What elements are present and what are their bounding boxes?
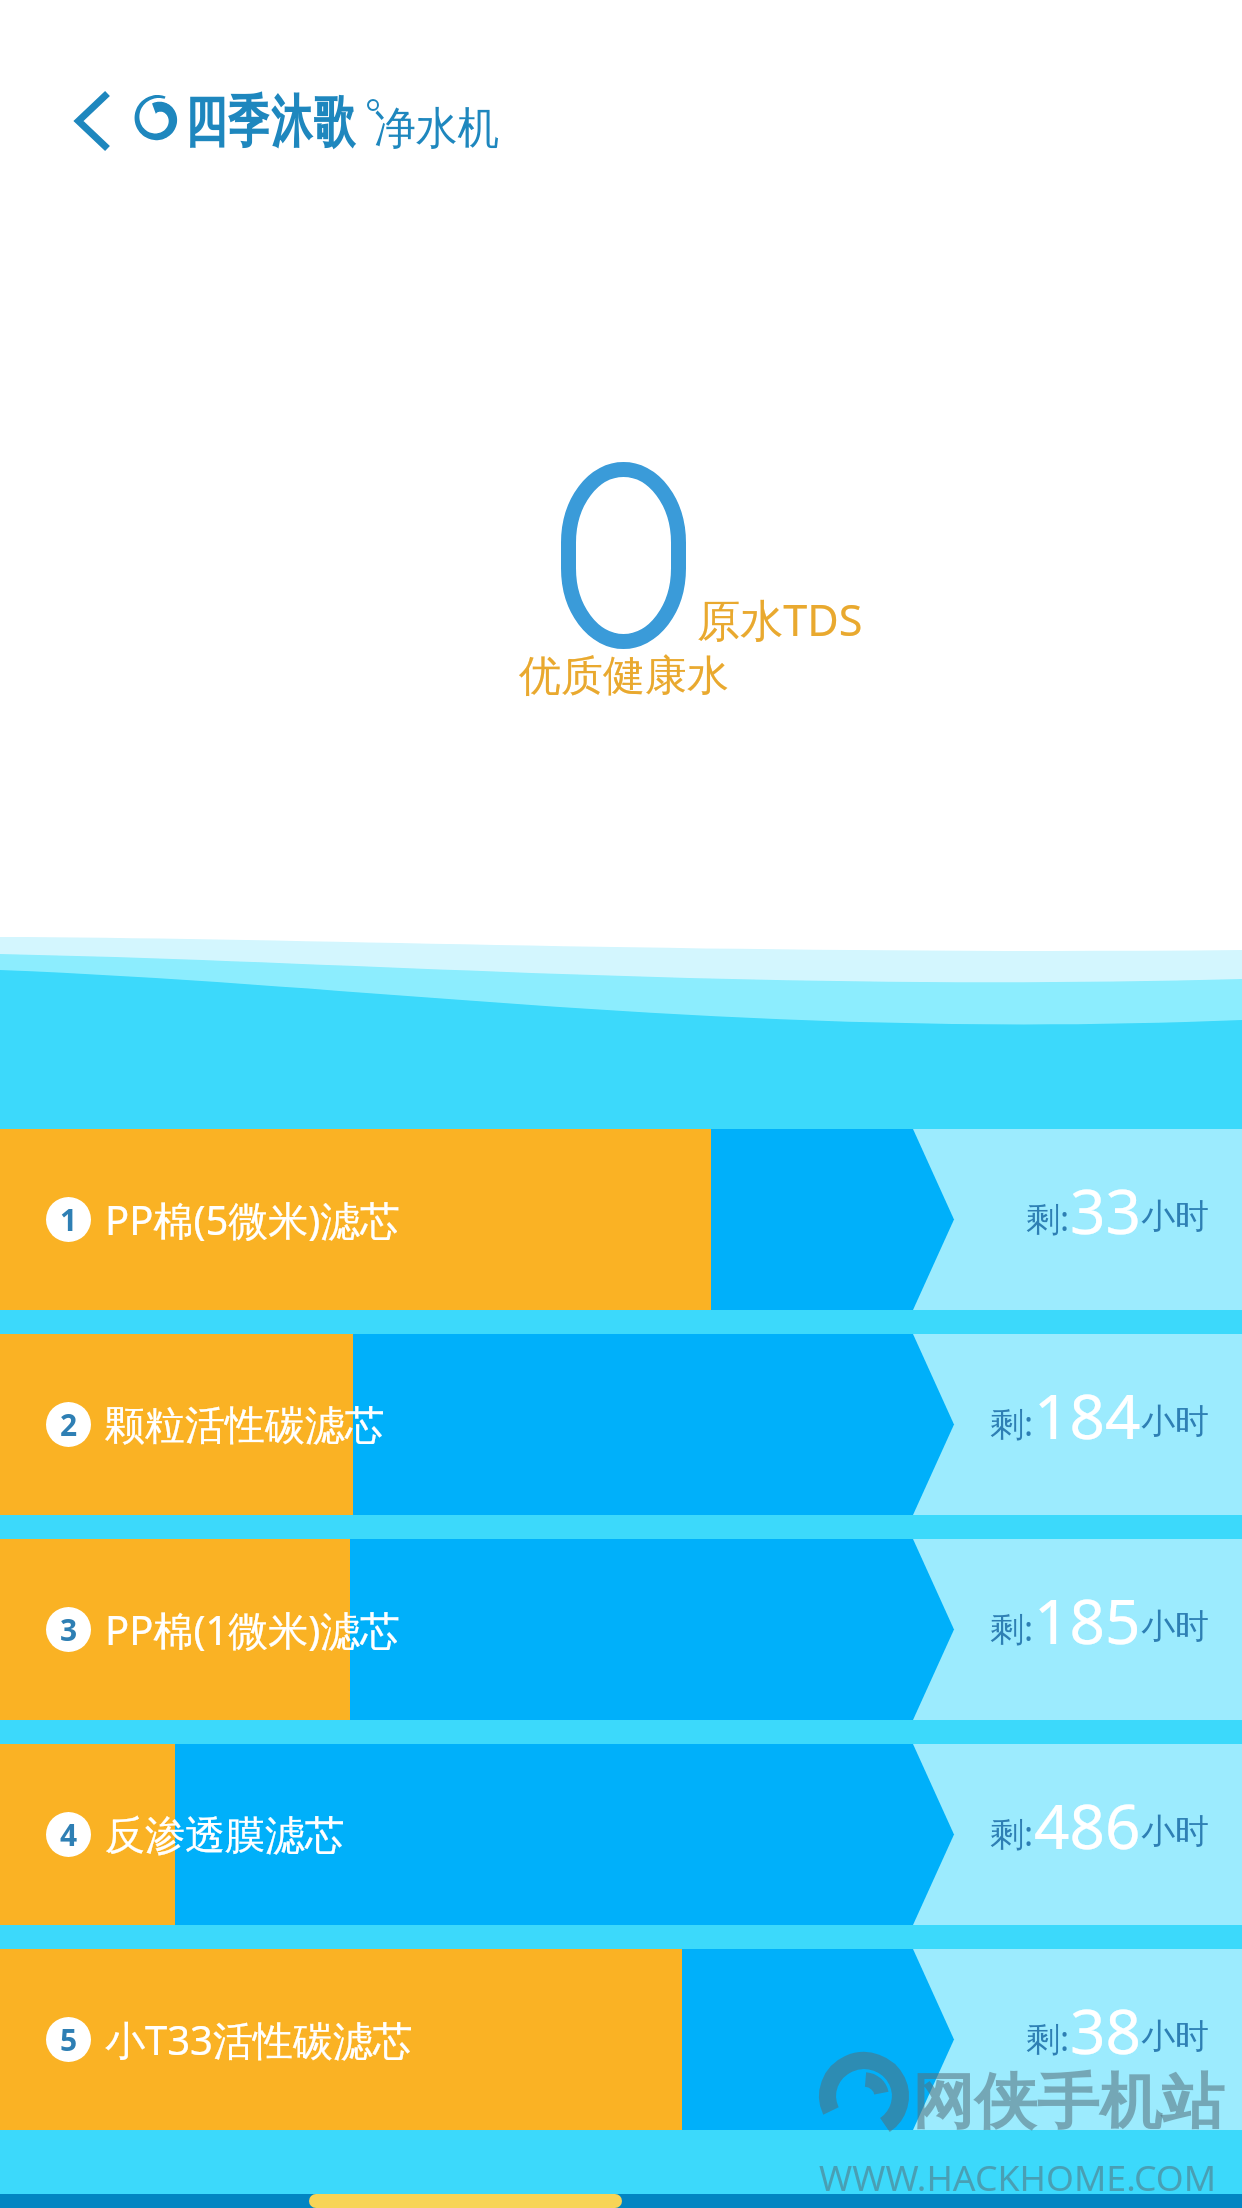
staticText: 剩: — [990, 1400, 1034, 1446]
staticText: 小时 — [1141, 1810, 1209, 1853]
staticText: 小时 — [1141, 1605, 1209, 1648]
button[interactable] — [309, 2194, 622, 2208]
button[interactable]: 1 — [0, 1129, 1242, 1310]
staticText: 185 — [1034, 1578, 1141, 1662]
staticText: 网侠手机站 — [912, 2064, 1224, 2140]
staticText: 原水TDS — [697, 589, 863, 649]
staticText: PP棉(1微米)滤芯 — [105, 1602, 401, 1657]
staticText: 小时 — [1141, 1195, 1209, 1238]
staticText: 5 — [60, 2019, 78, 2060]
staticText: 剩: — [1026, 2015, 1070, 2061]
staticText: 反渗透膜滤芯 — [105, 1810, 345, 1860]
button[interactable]: 5 — [0, 1949, 1242, 2130]
staticText: 3 — [60, 1609, 78, 1650]
staticText: 净水机 — [374, 101, 499, 156]
staticText: WWW.HACKHOME.COM — [819, 2154, 1217, 2202]
staticText: 1 — [60, 1199, 78, 1240]
staticText: 184 — [1034, 1373, 1141, 1457]
staticText: 剩: — [1026, 1195, 1070, 1241]
staticText: 2 — [60, 1404, 78, 1445]
staticText: 剩: — [990, 1605, 1034, 1651]
staticText: 四季沐歌 — [184, 87, 356, 159]
button[interactable]: 2 — [0, 1334, 1242, 1515]
staticText: 38 — [1070, 1988, 1141, 2072]
staticText: 优质健康水 — [519, 650, 729, 703]
button[interactable]: Back — [40, 70, 140, 170]
staticText: 33 — [1070, 1168, 1141, 1252]
button[interactable]: 4 — [0, 1744, 1242, 1925]
staticText: 颗粒活性碳滤芯 — [105, 1400, 385, 1450]
staticText: 小T33活性碳滤芯 — [105, 2012, 413, 2067]
staticText: 剩: — [990, 1810, 1034, 1856]
button[interactable]: 3 — [0, 1539, 1242, 1720]
staticText: 4 — [60, 1814, 78, 1855]
staticText: 486 — [1034, 1783, 1141, 1867]
staticText: 小时 — [1141, 2015, 1209, 2058]
staticText: 小时 — [1141, 1400, 1209, 1443]
staticText: PP棉(5微米)滤芯 — [105, 1192, 401, 1247]
